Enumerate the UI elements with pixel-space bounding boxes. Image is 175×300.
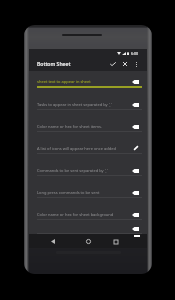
button[interactable]: Long press commands to be sent — [29, 176, 147, 198]
button[interactable]: More options — [130, 58, 142, 70]
staticText: A list of icons will appear here once ad… — [37, 146, 116, 151]
button[interactable]: Back — [46, 235, 59, 248]
staticText: Color name or hex for sheet items. — [37, 124, 103, 129]
staticText: Bottom Sheet — [37, 61, 71, 68]
staticText: Commands to be sent separated by ',' — [37, 168, 108, 173]
button[interactable]: Recents — [109, 235, 122, 248]
staticText: Long press commands to be sent — [37, 190, 100, 195]
button[interactable]: A list of icons will appear here once ad… — [29, 132, 147, 154]
staticText: 6:00 — [131, 51, 139, 56]
button[interactable]: Close — [119, 58, 131, 70]
button[interactable]: Tasks to appear in sheet separated by ',… — [29, 88, 147, 110]
button[interactable]: Home — [82, 235, 95, 248]
button[interactable]: Save — [107, 58, 119, 70]
staticText: Color name or hex for sheet background — [37, 212, 114, 217]
button[interactable] — [29, 220, 147, 234]
button[interactable]: sheet text to appear in sheet — [29, 71, 147, 88]
staticText: Tasks to appear in sheet separated by ',… — [37, 102, 112, 107]
button[interactable]: Commands to be sent separated by ',' — [29, 154, 147, 176]
button[interactable]: Color name or hex for sheet background — [29, 198, 147, 220]
button[interactable]: Color name or hex for sheet items. — [29, 110, 147, 132]
staticText: sheet text to appear in sheet — [37, 79, 91, 84]
